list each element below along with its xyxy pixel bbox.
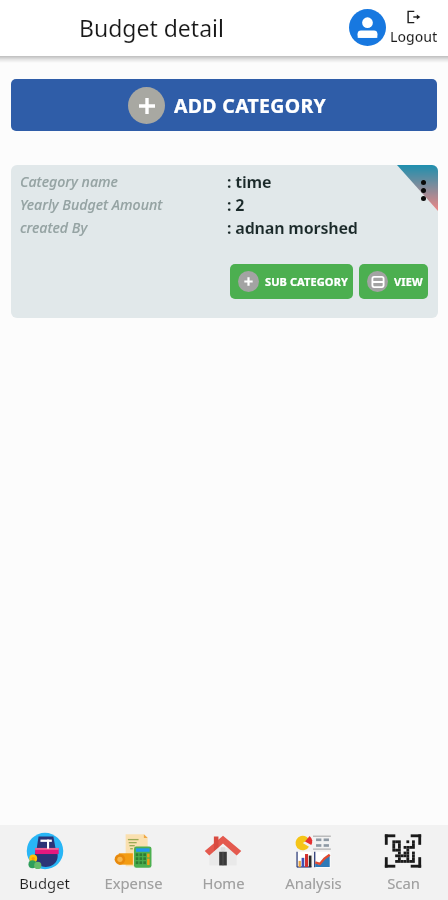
staticText: VIEW [394,274,423,289]
staticText: Scan [387,873,420,893]
button[interactable]: Expense [89,825,178,900]
staticText: created By [20,218,88,237]
staticText: Budget detail [79,12,224,43]
button[interactable]: VIEW [359,264,428,299]
staticText: : 2 [227,194,245,216]
button[interactable]: ADD CATEGORY [11,79,437,131]
staticText: Analysis [285,873,342,893]
staticText: Budget [19,873,70,893]
staticText: Logout [390,27,438,46]
button[interactable]: Account [349,9,386,46]
button[interactable]: Scan [358,825,448,900]
button[interactable]: Logout [388,10,440,46]
button[interactable]: Analysis [268,825,358,900]
staticText: Category name [20,172,118,191]
button[interactable]: Home [178,825,268,900]
button[interactable]: Budget [0,825,89,900]
staticText: ADD CATEGORY [174,92,327,119]
staticText: : adnan morshed [227,217,358,239]
button[interactable]: SUB CATEGORY [230,264,353,299]
staticText: Home [202,873,245,893]
staticText: : time [227,171,272,193]
staticText: Expense [104,873,163,893]
staticText: SUB CATEGORY [265,274,348,289]
button[interactable]: More options [397,165,438,211]
staticText: Yearly Budget Amount [20,195,163,214]
